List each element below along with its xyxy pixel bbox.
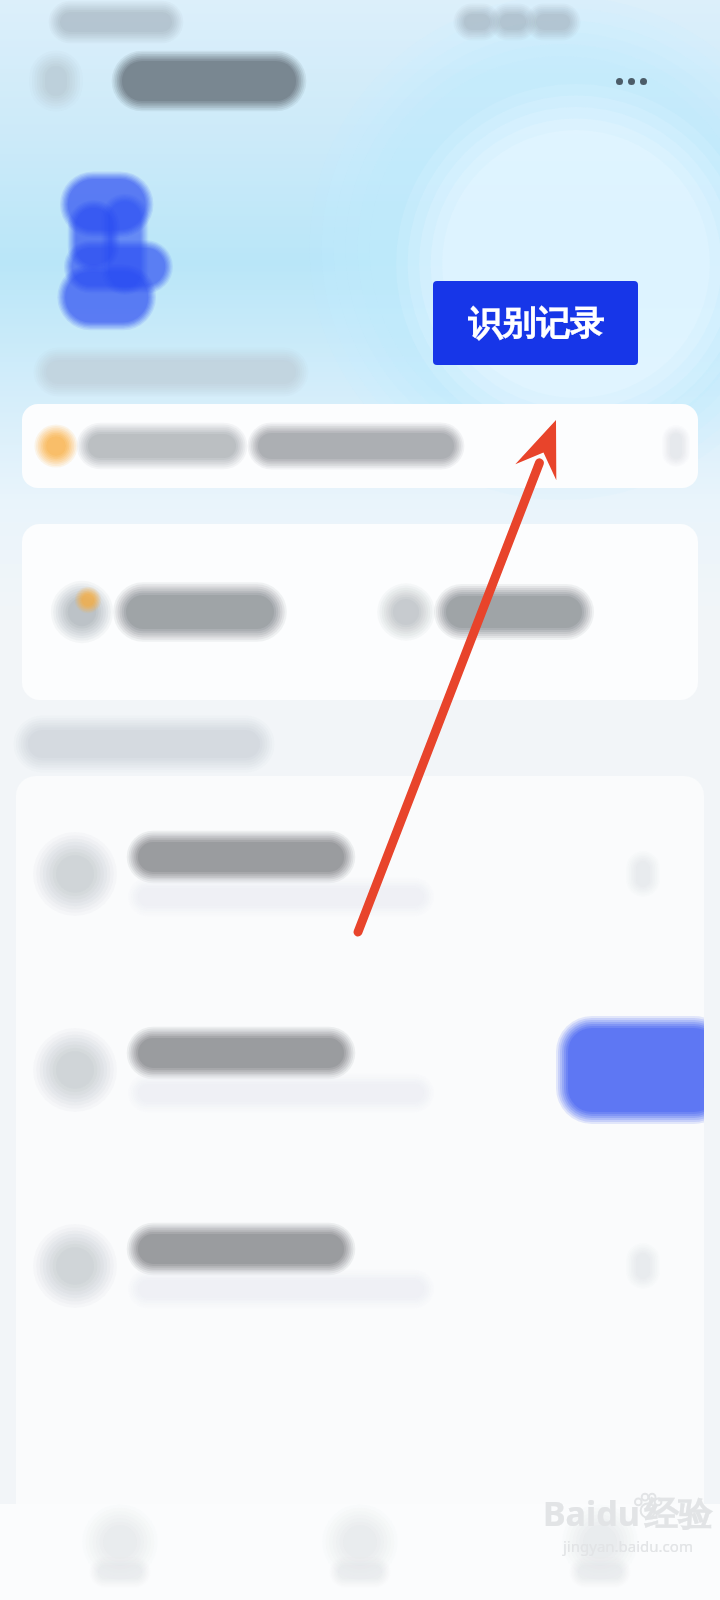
button[interactable] (22, 404, 698, 488)
button[interactable] (360, 524, 698, 700)
staticText: 识别记录 (468, 302, 604, 345)
staticText: 经验 (644, 1493, 712, 1536)
button[interactable]: 导航 1 (0, 1504, 240, 1600)
staticText: Baidu (543, 1490, 640, 1536)
button[interactable]: 导航 3 (480, 1504, 720, 1600)
button[interactable] (22, 524, 360, 700)
button[interactable]: 更多 (616, 57, 672, 105)
staticText: jingyan.baidu.com (563, 1536, 693, 1556)
button[interactable] (16, 1168, 704, 1364)
button[interactable]: 识别记录 (433, 281, 638, 365)
button[interactable]: 返回 (30, 55, 82, 107)
button[interactable]: 导航 2 (240, 1504, 480, 1600)
button[interactable] (16, 972, 704, 1168)
button[interactable] (16, 776, 704, 972)
